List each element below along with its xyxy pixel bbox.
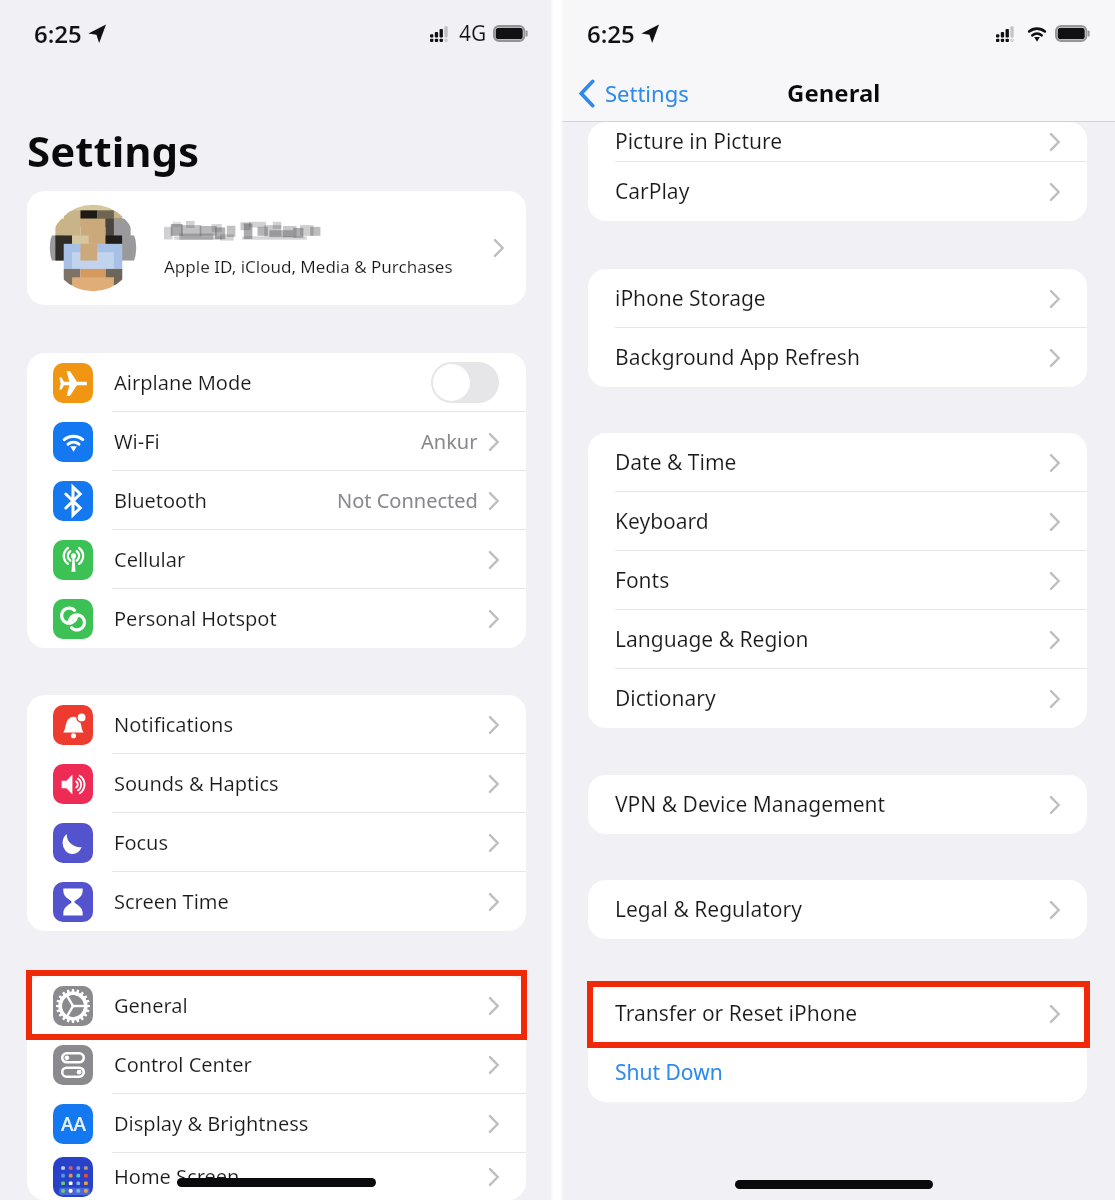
staticText: Home Screen <box>114 1163 240 1190</box>
button[interactable]: Language & Region <box>588 610 1087 669</box>
staticText: Bluetooth <box>114 487 207 514</box>
button[interactable]: Sounds & Haptics <box>27 754 526 813</box>
staticText: Shut Down <box>615 1058 723 1087</box>
staticText: Date & Time <box>615 448 737 477</box>
staticText: Sounds & Haptics <box>114 770 279 797</box>
button[interactable]: General <box>27 976 526 1035</box>
button[interactable]: Shut Down <box>588 1043 1087 1102</box>
button[interactable]: Notifications <box>27 695 526 754</box>
staticText: Notifications <box>114 711 233 738</box>
staticText: General <box>787 76 881 109</box>
button[interactable]: Focus <box>27 813 526 872</box>
button[interactable]: AA <box>27 1094 526 1153</box>
staticText: Fonts <box>615 566 670 595</box>
button[interactable]: Settings <box>570 78 697 108</box>
button[interactable]: Home Screen <box>27 1153 526 1200</box>
button[interactable]: iPhone Storage <box>588 269 1087 328</box>
staticText: Personal Hotspot <box>114 605 277 632</box>
staticText: Ankur <box>421 428 478 455</box>
staticText: Dictionary <box>615 684 716 713</box>
staticText: Transfer or Reset iPhone <box>615 999 858 1028</box>
button[interactable]: Airplane Mode toggle <box>431 362 499 403</box>
staticText: General <box>114 992 188 1019</box>
staticText: Background App Refresh <box>615 343 860 372</box>
button[interactable]: Personal Hotspot <box>27 589 526 648</box>
staticText: Not Connected <box>337 487 478 514</box>
button[interactable]: Dictionary <box>588 669 1087 728</box>
staticText: Display & Brightness <box>114 1110 309 1137</box>
button[interactable]: Screen Time <box>27 872 526 931</box>
button[interactable]: VPN & Device Management <box>588 775 1087 834</box>
button[interactable]: Fonts <box>588 551 1087 610</box>
staticText: 6:25 <box>587 17 635 50</box>
button[interactable]: Apple ID, iCloud, Media & Purchases <box>27 191 526 305</box>
staticText: Settings <box>27 122 200 179</box>
staticText: Wi-Fi <box>114 428 160 455</box>
button[interactable]: Airplane Mode <box>27 353 526 412</box>
staticText: Keyboard <box>615 507 709 536</box>
staticText: Cellular <box>114 546 186 573</box>
staticText: iPhone Storage <box>615 284 766 313</box>
button[interactable]: Control Center <box>27 1035 526 1094</box>
staticText: Control Center <box>114 1051 252 1078</box>
staticText: Apple ID, iCloud, Media & Purchases <box>164 255 453 278</box>
button[interactable]: Keyboard <box>588 492 1087 551</box>
staticText: Language & Region <box>615 625 809 654</box>
button[interactable]: Date & Time <box>588 433 1087 492</box>
staticText: VPN & Device Management <box>615 790 886 819</box>
button[interactable]: CarPlay <box>588 162 1087 221</box>
button[interactable]: Cellular <box>27 530 526 589</box>
staticText: CarPlay <box>615 177 690 206</box>
staticText: Legal & Regulatory <box>615 895 802 924</box>
button[interactable]: Legal & Regulatory <box>588 880 1087 939</box>
staticText: Focus <box>114 829 169 856</box>
button[interactable]: Transfer or Reset iPhone <box>588 984 1087 1043</box>
staticText: Picture in Picture <box>615 127 783 156</box>
button[interactable]: Wi-Fi <box>27 412 526 471</box>
staticText: Settings <box>605 78 689 108</box>
staticText: 4G <box>459 19 487 48</box>
staticText: Screen Time <box>114 888 229 915</box>
button[interactable]: Picture in Picture <box>588 122 1087 161</box>
staticText: Airplane Mode <box>114 369 252 396</box>
button[interactable]: Bluetooth <box>27 471 526 530</box>
staticText: 6:25 <box>34 17 82 50</box>
button[interactable]: Background App Refresh <box>588 328 1087 387</box>
staticText: AA <box>61 1111 86 1137</box>
